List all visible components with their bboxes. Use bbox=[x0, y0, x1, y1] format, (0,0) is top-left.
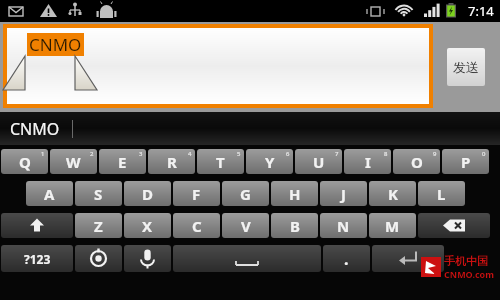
staticText: G bbox=[240, 184, 251, 204]
staticText: M bbox=[385, 216, 400, 236]
staticText: O bbox=[411, 152, 423, 172]
staticText: V bbox=[241, 216, 251, 236]
button[interactable]: Shift bbox=[1, 213, 73, 238]
staticText: D bbox=[142, 184, 153, 204]
button[interactable]: K bbox=[369, 181, 416, 206]
staticText: 3 bbox=[139, 150, 143, 158]
staticText: B bbox=[290, 216, 300, 236]
staticText: 1 bbox=[41, 150, 45, 158]
button[interactable]: C bbox=[173, 213, 220, 238]
staticText: 发送 bbox=[453, 59, 479, 75]
staticText: 2 bbox=[90, 150, 94, 158]
staticText: CNMO bbox=[29, 33, 82, 56]
staticText: Y bbox=[265, 152, 275, 172]
staticText: C bbox=[192, 216, 202, 236]
staticText: 8 bbox=[384, 150, 388, 158]
button[interactable]: A bbox=[26, 181, 73, 206]
button[interactable]: J bbox=[320, 181, 367, 206]
staticText: F bbox=[192, 184, 201, 204]
staticText: ?123 bbox=[24, 251, 51, 267]
staticText: P bbox=[461, 152, 471, 172]
button[interactable]: V bbox=[222, 213, 269, 238]
button[interactable]: CNMO bbox=[7, 28, 429, 104]
staticText: S bbox=[94, 184, 103, 204]
staticText: T bbox=[216, 152, 225, 172]
button[interactable]: I bbox=[344, 149, 391, 174]
staticText: 6 bbox=[286, 150, 290, 158]
button[interactable]: Enter bbox=[372, 245, 444, 272]
staticText: W bbox=[66, 152, 81, 172]
button[interactable]: N bbox=[320, 213, 367, 238]
button[interactable]: Q bbox=[1, 149, 48, 174]
button[interactable]: W bbox=[50, 149, 97, 174]
button[interactable]: G bbox=[222, 181, 269, 206]
button[interactable]: P bbox=[442, 149, 489, 174]
staticText: L bbox=[437, 184, 446, 204]
button[interactable]: H bbox=[271, 181, 318, 206]
button[interactable]: ?123 bbox=[1, 245, 73, 272]
button[interactable]: Delete bbox=[418, 213, 490, 238]
button[interactable]: F bbox=[173, 181, 220, 206]
button[interactable]: Input settings bbox=[75, 245, 122, 272]
button[interactable]: Z bbox=[75, 213, 122, 238]
button[interactable]: T bbox=[197, 149, 244, 174]
button[interactable]: Space bbox=[173, 245, 321, 272]
staticText: Q bbox=[19, 152, 31, 172]
staticText: N bbox=[337, 216, 350, 236]
staticText: Z bbox=[94, 216, 103, 236]
staticText: . bbox=[344, 248, 349, 270]
button[interactable]: S bbox=[75, 181, 122, 206]
staticText: 7:14 bbox=[468, 2, 494, 20]
staticText: 7 bbox=[335, 150, 339, 158]
button[interactable]: Voice input bbox=[124, 245, 171, 272]
staticText: 4 bbox=[188, 150, 192, 158]
staticText: 9 bbox=[433, 150, 437, 158]
staticText: A bbox=[44, 184, 55, 204]
button[interactable]: U bbox=[295, 149, 342, 174]
staticText: 0 bbox=[482, 150, 486, 158]
staticText: CNMO bbox=[10, 118, 60, 140]
button[interactable]: 发送 bbox=[447, 48, 485, 86]
staticText: J bbox=[341, 184, 346, 204]
staticText: I bbox=[365, 152, 371, 172]
button[interactable]: CNMO bbox=[8, 118, 62, 140]
button[interactable]: X bbox=[124, 213, 171, 238]
staticText: H bbox=[289, 184, 301, 204]
staticText: E bbox=[118, 152, 127, 172]
button[interactable]: B bbox=[271, 213, 318, 238]
button[interactable]: M bbox=[369, 213, 416, 238]
button[interactable]: D bbox=[124, 181, 171, 206]
button[interactable]: Y bbox=[246, 149, 293, 174]
button[interactable]: L bbox=[418, 181, 465, 206]
button[interactable]: E bbox=[99, 149, 146, 174]
button[interactable]: R bbox=[148, 149, 195, 174]
staticText: K bbox=[388, 184, 398, 204]
staticText: 手机中国 bbox=[444, 254, 488, 268]
button[interactable]: O bbox=[393, 149, 440, 174]
staticText: 5 bbox=[237, 150, 241, 158]
button[interactable]: . bbox=[323, 245, 370, 272]
staticText: CNMO.com bbox=[444, 268, 494, 280]
staticText: R bbox=[167, 152, 177, 172]
staticText: U bbox=[313, 152, 325, 172]
staticText: X bbox=[142, 216, 153, 236]
